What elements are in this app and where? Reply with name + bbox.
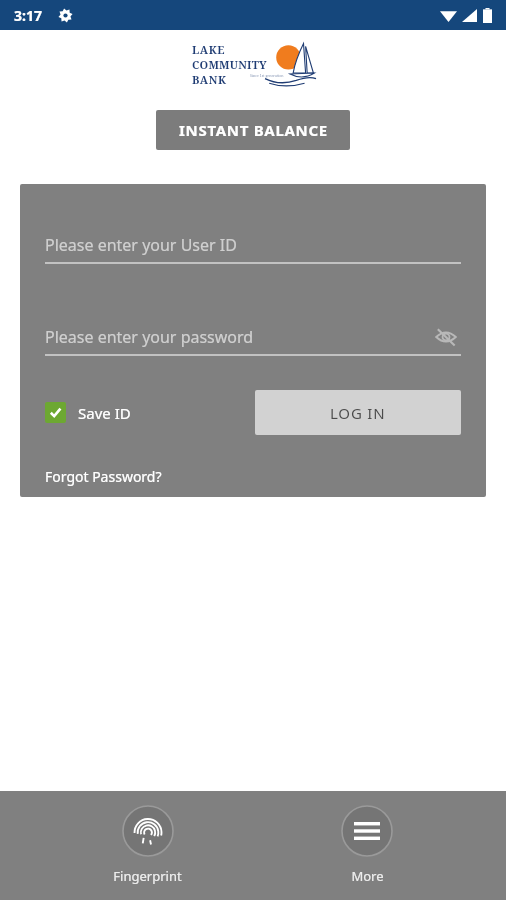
button[interactable]: Forgot Password? xyxy=(45,467,162,486)
button[interactable]: Save ID xyxy=(45,402,131,423)
button[interactable]: Fingerprint xyxy=(103,791,192,891)
button[interactable]: Please enter your User ID xyxy=(45,228,461,262)
staticText: COMMUNITY xyxy=(192,57,267,72)
staticText: More xyxy=(351,867,384,885)
button[interactable]: Please enter your password xyxy=(45,320,461,354)
button[interactable]: INSTANT BALANCE xyxy=(156,110,350,150)
staticText: Fingerprint xyxy=(113,867,182,885)
staticText: Forgot Password? xyxy=(45,467,162,486)
staticText: Please enter your User ID xyxy=(45,234,237,256)
staticText: INSTANT BALANCE xyxy=(179,120,328,140)
staticText: 3:17 xyxy=(14,6,42,25)
staticText: LAKE xyxy=(192,42,226,57)
button[interactable]: Show password xyxy=(431,322,461,352)
staticText: Please enter your password xyxy=(45,326,254,348)
button[interactable]: LOG IN xyxy=(255,390,461,435)
button[interactable]: More xyxy=(331,791,403,891)
staticText: Save ID xyxy=(78,403,131,423)
staticText: LOG IN xyxy=(330,403,386,423)
staticText: BANK xyxy=(192,72,227,87)
staticText: Since 1st generation xyxy=(250,73,284,78)
